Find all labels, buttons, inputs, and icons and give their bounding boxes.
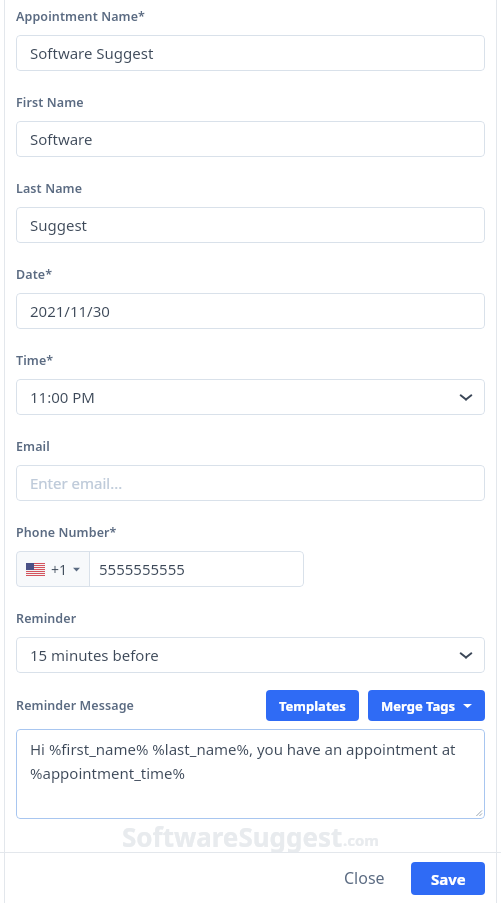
staticText: 11:00 PM — [30, 387, 95, 407]
button[interactable]: Merge Tags — [368, 690, 485, 721]
button[interactable]: Suggest — [16, 207, 485, 243]
staticText: Phone Number* — [16, 524, 117, 541]
staticText: 5555555555 — [99, 559, 185, 579]
staticText: Reminder — [16, 610, 77, 627]
staticText: Reminder Message — [16, 697, 134, 714]
staticText: 15 minutes before — [30, 645, 159, 665]
staticText: Software — [30, 129, 93, 149]
button[interactable]: Hi %first_name% %last_name%, you have an… — [16, 729, 485, 819]
staticText: SoftwareSuggest — [122, 819, 343, 852]
staticText: First Name — [16, 94, 84, 111]
staticText: Appointment Name* — [16, 8, 146, 25]
staticText: Hi %first_name% %last_name%, you have an… — [30, 739, 461, 783]
staticText: Templates — [279, 697, 346, 715]
staticText: +1 — [51, 560, 68, 579]
button[interactable]: 15 minutes before — [16, 637, 485, 673]
staticText: Date* — [16, 266, 53, 283]
staticText: Time* — [16, 352, 54, 369]
staticText: Suggest — [30, 215, 88, 235]
button[interactable]: Enter email... — [16, 465, 485, 501]
button[interactable]: 11:00 PM — [16, 379, 485, 415]
staticText: 2021/11/30 — [30, 301, 110, 321]
staticText: .com — [343, 830, 379, 850]
staticText: Save — [431, 869, 466, 889]
button[interactable]: Software — [16, 121, 485, 157]
staticText: Last Name — [16, 180, 83, 197]
staticText: Software Suggest — [30, 43, 154, 63]
button[interactable]: Close — [332, 859, 397, 897]
button[interactable]: 2021/11/30 — [16, 293, 485, 329]
button[interactable]: Software Suggest — [16, 35, 485, 71]
staticText: Email — [16, 438, 50, 455]
staticText: Enter email... — [30, 473, 123, 493]
button[interactable]: 5555555555 — [90, 551, 304, 587]
button[interactable]: Save — [411, 862, 485, 895]
button[interactable]: Select country code — [16, 551, 89, 587]
staticText: Merge Tags — [381, 697, 456, 715]
staticText: Close — [344, 867, 385, 889]
button[interactable]: Templates — [266, 690, 359, 721]
